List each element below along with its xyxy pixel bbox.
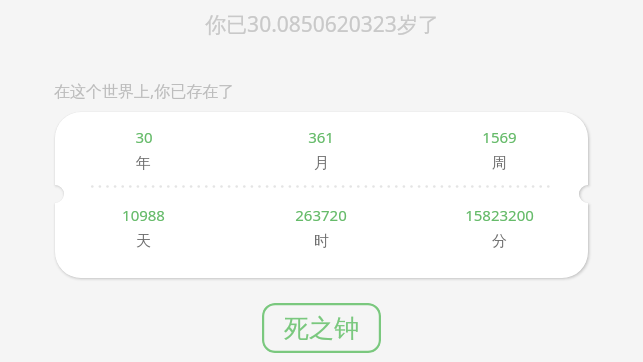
staticText: 263720 <box>295 205 347 225</box>
staticText: 1569 <box>482 127 517 147</box>
staticText: 你已30.0850620323岁了 <box>205 10 439 39</box>
staticText: 10988 <box>122 205 165 225</box>
staticText: 15823200 <box>465 205 534 225</box>
button[interactable]: 30 <box>55 112 588 278</box>
button[interactable]: 死之钟 <box>262 303 381 353</box>
staticText: 月 <box>314 154 329 173</box>
staticText: 361 <box>308 127 334 147</box>
staticText: 死之钟 <box>284 313 359 344</box>
staticText: 时 <box>314 232 329 251</box>
staticText: 分 <box>492 232 507 251</box>
staticText: 年 <box>136 154 151 173</box>
staticText: 周 <box>492 154 507 173</box>
staticText: 天 <box>136 232 151 251</box>
staticText: 在这个世界上,你已存在了 <box>54 80 235 102</box>
staticText: 30 <box>135 127 153 147</box>
